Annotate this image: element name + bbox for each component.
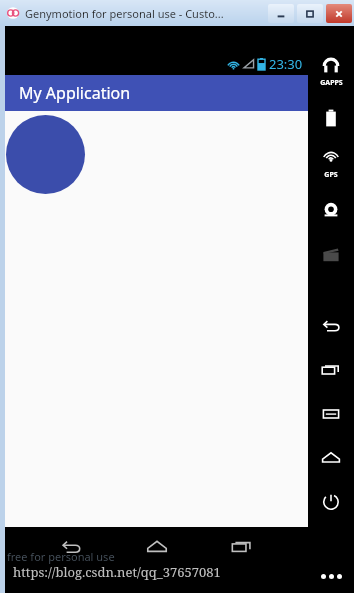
staticText: My Application [19,82,131,104]
button[interactable]: Home [308,446,354,470]
button[interactable]: Camera [308,198,354,222]
button[interactable]: Power [308,490,354,514]
button[interactable]: Recents [222,527,262,567]
button[interactable]: GAPPS [308,56,354,90]
button[interactable]: Menu [308,402,354,426]
button[interactable]: Window [268,4,294,23]
button[interactable]: Window [297,4,323,23]
button[interactable]: Back [308,314,354,338]
staticText: https://blog.csdn.net/qq_37657081 [13,563,221,581]
button[interactable]: GPS [308,148,354,182]
staticText: 23:30 [269,55,303,73]
button[interactable]: Close [326,4,352,23]
button[interactable]: More [308,563,354,589]
staticText: GAPPS [320,78,343,88]
button[interactable]: Back [51,527,91,567]
button[interactable]: Screen record [308,242,354,266]
staticText: Genymotion for personal use - Custo... [25,6,224,21]
button[interactable]: My Application [5,75,308,111]
staticText: GPS [324,170,338,180]
staticText: free for personal use [7,549,115,564]
button[interactable]: Recents [308,358,354,382]
button[interactable]: Battery [308,106,354,130]
button[interactable]: Home [137,527,177,567]
